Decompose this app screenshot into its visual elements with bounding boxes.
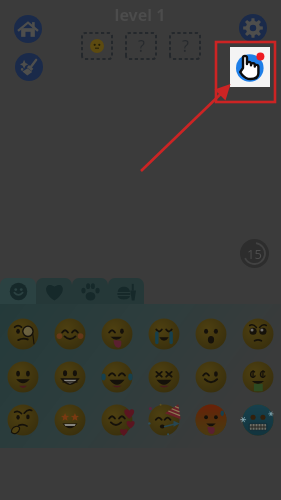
- button[interactable]: Favourites: [36, 278, 72, 304]
- button[interactable]: Hint: [230, 47, 270, 87]
- button[interactable]: Clean: [15, 53, 43, 81]
- button[interactable]: Emoji 11: [187, 355, 234, 398]
- button[interactable]: Emoji 3: [93, 312, 140, 355]
- button[interactable]: Emoji 14: [46, 398, 93, 441]
- button[interactable]: Emoji 4: [140, 312, 187, 355]
- button[interactable]: Emoji 5: [187, 312, 234, 355]
- button[interactable]: Emoji 18: [234, 398, 281, 441]
- button[interactable]: Emoji 6: [234, 312, 281, 355]
- button[interactable]: Emoji 15: [93, 398, 140, 441]
- button[interactable]: Food: [108, 278, 144, 304]
- button[interactable]: Settings: [239, 14, 267, 42]
- staticText: ?: [138, 35, 145, 57]
- button[interactable]: Answer slot 2: [125, 32, 157, 60]
- button[interactable]: Timer: [240, 239, 269, 268]
- button[interactable]: Answer slot 1: [81, 32, 113, 60]
- button[interactable]: Emoji 17: [187, 398, 234, 441]
- button[interactable]: Home: [14, 15, 42, 43]
- button[interactable]: Emoji 16: [140, 398, 187, 441]
- button[interactable]: Emoji 10: [140, 355, 187, 398]
- button[interactable]: Emoji 13: [0, 398, 46, 441]
- button[interactable]: Animals: [72, 278, 108, 304]
- button[interactable]: Emoji 2: [46, 312, 93, 355]
- staticText: 15: [247, 245, 262, 263]
- button[interactable]: Answer slot 3: [169, 32, 201, 60]
- staticText: level 1: [103, 4, 177, 26]
- button[interactable]: Smileys: [0, 278, 36, 304]
- button[interactable]: Emoji 7: [0, 355, 46, 398]
- button[interactable]: Emoji 8: [46, 355, 93, 398]
- button[interactable]: Emoji 9: [93, 355, 140, 398]
- button[interactable]: Emoji 12: [234, 355, 281, 398]
- button[interactable]: Emoji 1: [0, 312, 46, 355]
- staticText: ?: [182, 35, 189, 57]
